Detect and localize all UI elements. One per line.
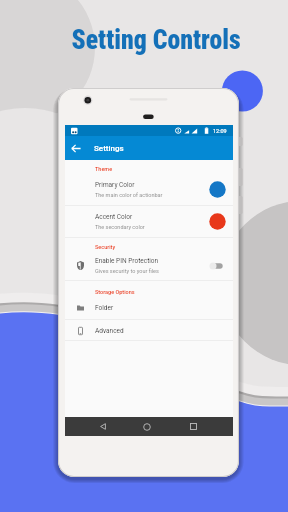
button[interactable]: Back: [92, 417, 114, 436]
button[interactable]: Home: [136, 417, 158, 436]
button[interactable]: Advanced: [65, 322, 233, 340]
staticText: Folder: [95, 304, 114, 312]
button[interactable]: Enable PIN Protection: [65, 253, 233, 278]
button[interactable]: Primary Color: [65, 177, 233, 202]
staticText: Security: [95, 244, 116, 250]
button[interactable]: Enable PIN Protection toggle: [207, 260, 227, 272]
staticText: The secondary color: [95, 224, 145, 230]
staticText: Accent Color: [95, 213, 133, 221]
button[interactable]: Back: [65, 136, 87, 160]
staticText: Primary Color: [95, 181, 135, 189]
staticText: Enable PIN Protection: [95, 257, 159, 265]
staticText: Theme: [95, 166, 113, 172]
staticText: Setting Controls: [71, 23, 241, 56]
button[interactable]: Recents: [182, 417, 204, 436]
staticText: Gives security to your files: [95, 268, 159, 274]
button[interactable]: Accent Color: [65, 209, 233, 234]
staticText: 12:09: [213, 128, 227, 134]
staticText: Settings: [94, 144, 124, 153]
staticText: Storage Options: [95, 289, 135, 295]
staticText: Advanced: [95, 327, 124, 335]
button[interactable]: Folder: [65, 299, 233, 317]
staticText: The main color of actionbar: [95, 192, 163, 198]
